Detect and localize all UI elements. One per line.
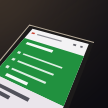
button[interactable]: Smartphone showing a green information w… bbox=[0, 0, 108, 108]
